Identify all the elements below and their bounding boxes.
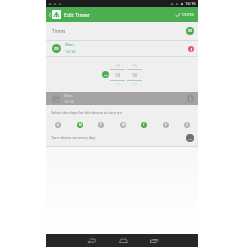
button[interactable]: DONE [172, 7, 197, 22]
staticText: T [143, 123, 145, 127]
button[interactable]: Back [85, 234, 97, 247]
staticText: 16:16 [185, 1, 196, 7]
staticText: M [79, 123, 82, 127]
button[interactable]: OFF [46, 92, 198, 105]
staticText: OFF [54, 98, 59, 101]
button[interactable]: Delete timer [188, 46, 194, 52]
staticText: W [122, 123, 125, 127]
button[interactable]: S [55, 122, 61, 128]
button[interactable]: Number picker [110, 63, 125, 87]
staticText: ON [188, 29, 192, 33]
button[interactable]: T [98, 122, 104, 128]
staticText: T [100, 123, 102, 127]
staticText: 17 [110, 82, 125, 87]
button[interactable]: Add time [186, 27, 194, 35]
button[interactable]: W [120, 122, 126, 128]
staticText: 16:16 [65, 49, 76, 55]
staticText: 15 [110, 63, 125, 68]
staticText: 16 [127, 72, 142, 78]
button[interactable]: Turn device on every day [46, 129, 198, 146]
staticText: ON [54, 47, 59, 51]
staticText: F [165, 123, 167, 127]
staticText: Mon [64, 93, 73, 98]
staticText: Turn device on every day [51, 135, 96, 140]
staticText: DONE [182, 12, 194, 18]
button[interactable]: Number picker [127, 63, 142, 87]
staticText: Mon [65, 42, 74, 48]
staticText: Times [52, 28, 66, 35]
button[interactable]: Home, up [52, 10, 61, 19]
staticText: S [57, 123, 59, 127]
staticText: 17 [127, 82, 142, 87]
button[interactable]: S [184, 122, 190, 128]
button[interactable]: F [163, 122, 169, 128]
staticText: Edit Timer [64, 11, 90, 18]
staticText: OFF [188, 137, 193, 140]
button[interactable]: T [141, 122, 147, 128]
button[interactable]: Enable [102, 71, 109, 78]
button[interactable]: ON [46, 41, 198, 56]
staticText: ON [104, 73, 108, 76]
staticText: S [186, 123, 188, 127]
button[interactable]: Delete timer [187, 95, 194, 102]
button[interactable]: M [77, 122, 83, 128]
staticText: 15 [127, 63, 142, 68]
staticText: Select the days for the device to turn o… [51, 110, 122, 115]
button[interactable]: Recent apps [148, 234, 160, 247]
staticText: 15:16 [64, 99, 75, 104]
button[interactable]: Home [117, 234, 129, 247]
staticText: 16 [110, 72, 125, 78]
